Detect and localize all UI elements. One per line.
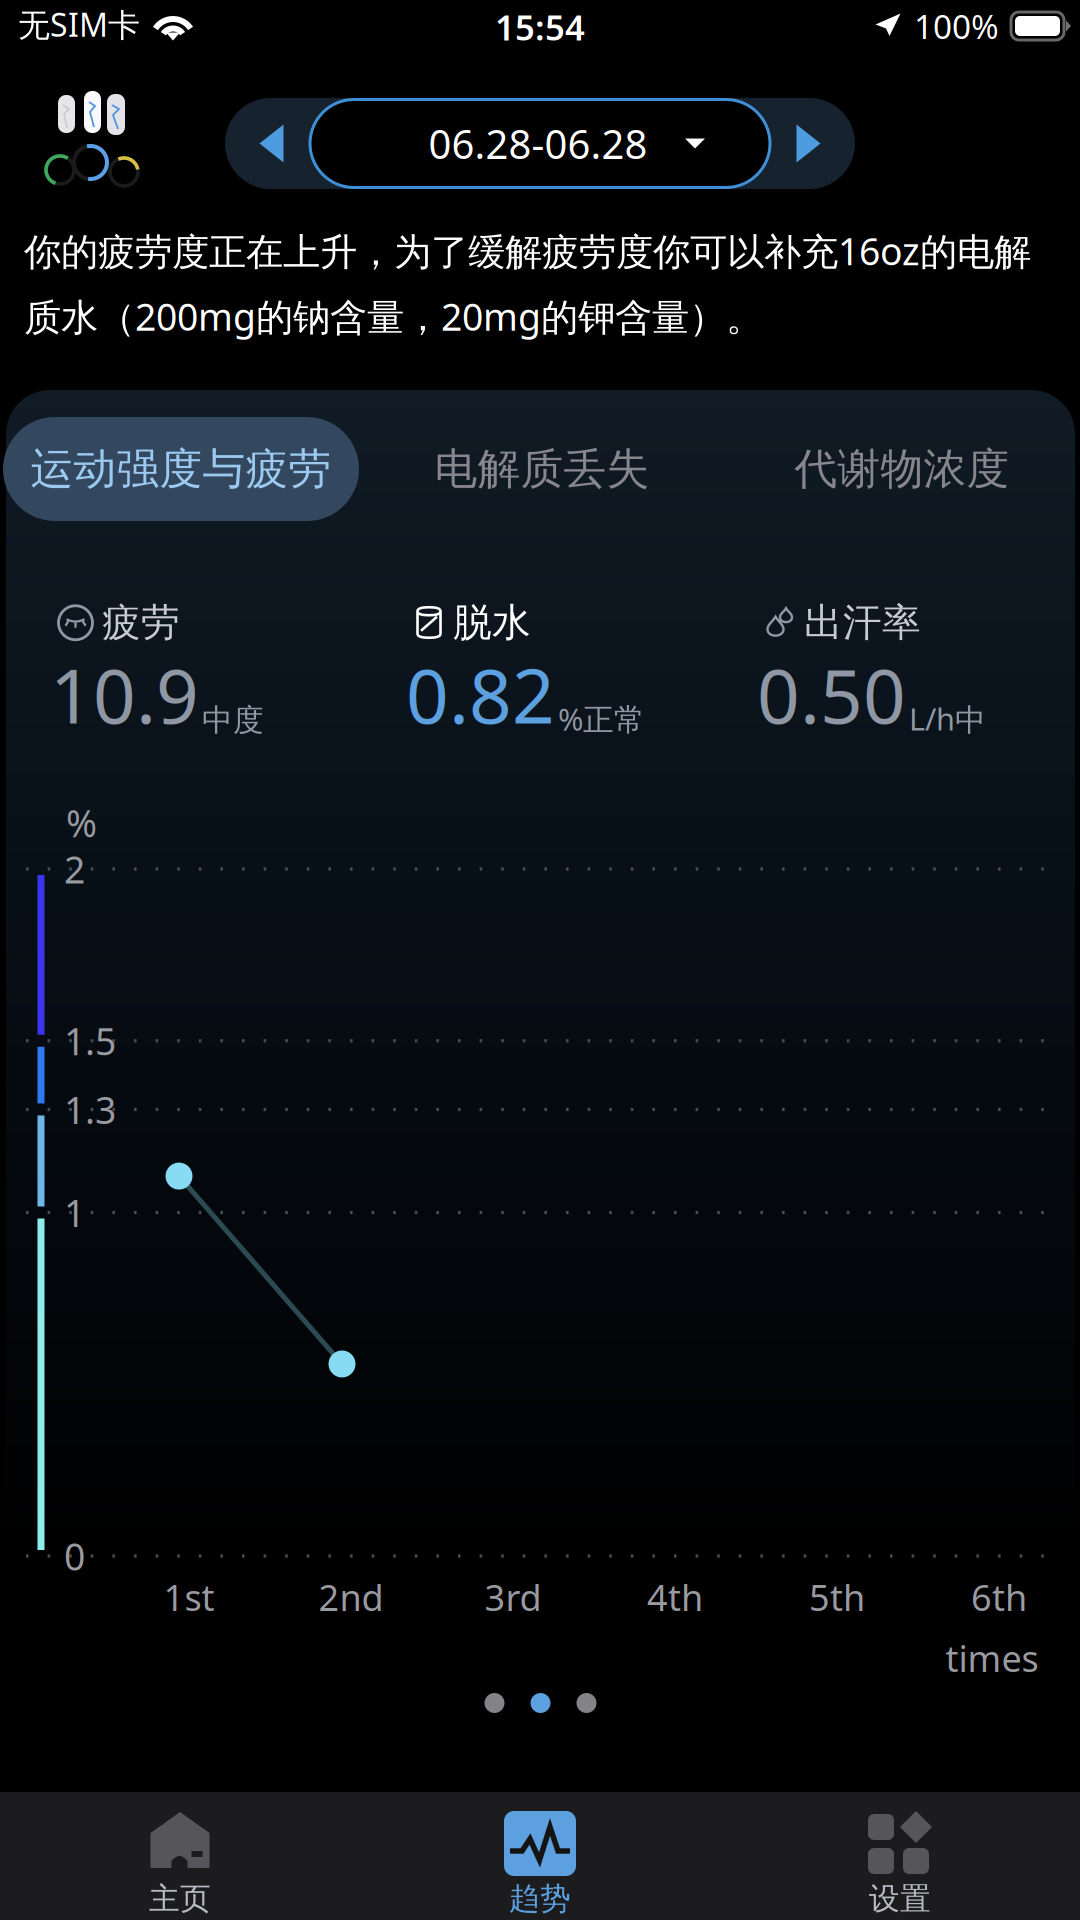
staticText: 1	[64, 1188, 85, 1237]
button[interactable]: 上一个日期区间	[233, 99, 310, 187]
staticText: 中度	[202, 701, 264, 739]
button[interactable]: 下一个日期区间	[770, 99, 847, 187]
button[interactable]: 06.28-06.28	[310, 99, 770, 187]
staticText: 运动强度与疲劳	[30, 443, 331, 495]
staticText: 1.3	[64, 1085, 116, 1134]
staticText: 无SIM卡	[18, 3, 140, 45]
button[interactable]: 趋势	[360, 1792, 720, 1920]
staticText: 4th	[647, 1573, 703, 1621]
staticText: times	[945, 1634, 1038, 1682]
staticText: 脱水	[453, 599, 531, 646]
staticText: %正常	[558, 698, 645, 739]
staticText: 主页	[149, 1880, 211, 1918]
staticText: 3rd	[484, 1573, 541, 1621]
staticText: 6th	[971, 1573, 1027, 1621]
button[interactable]: 代谢物浓度	[762, 417, 1042, 521]
staticText: 0	[64, 1531, 85, 1581]
button[interactable]: 电解质丢失	[402, 417, 682, 521]
staticText: L/h中	[909, 698, 986, 739]
staticText: 15:54	[495, 4, 585, 50]
staticText: 电解质丢失	[434, 443, 649, 495]
staticText: 设置	[869, 1880, 931, 1918]
staticText: 0.50	[757, 645, 906, 744]
staticText: 代谢物浓度	[794, 443, 1009, 495]
staticText: 5th	[809, 1573, 865, 1621]
staticText: 出汗率	[804, 599, 921, 646]
staticText: 1.5	[64, 1016, 116, 1066]
staticText: 趋势	[509, 1880, 571, 1918]
button[interactable]: 设置	[720, 1792, 1080, 1920]
staticText: 10.9	[50, 645, 199, 744]
button[interactable]: 主页	[0, 1792, 360, 1920]
button[interactable]: 运动强度与疲劳	[3, 417, 359, 521]
staticText: 2nd	[318, 1573, 383, 1621]
staticText: 疲劳	[102, 599, 180, 646]
staticText: %	[66, 798, 97, 848]
staticText: 2	[64, 844, 85, 894]
staticText: 100%	[914, 4, 999, 48]
staticText: 质水（200mg的钠含量，20mg的钾含量）。	[24, 292, 763, 341]
staticText: 0.82	[406, 645, 555, 744]
staticText: 1st	[163, 1573, 214, 1621]
staticText: 06.28-06.28	[428, 117, 647, 170]
staticText: 你的疲劳度正在上升，为了缓解疲劳度你可以补充16oz的电解	[24, 226, 1031, 276]
